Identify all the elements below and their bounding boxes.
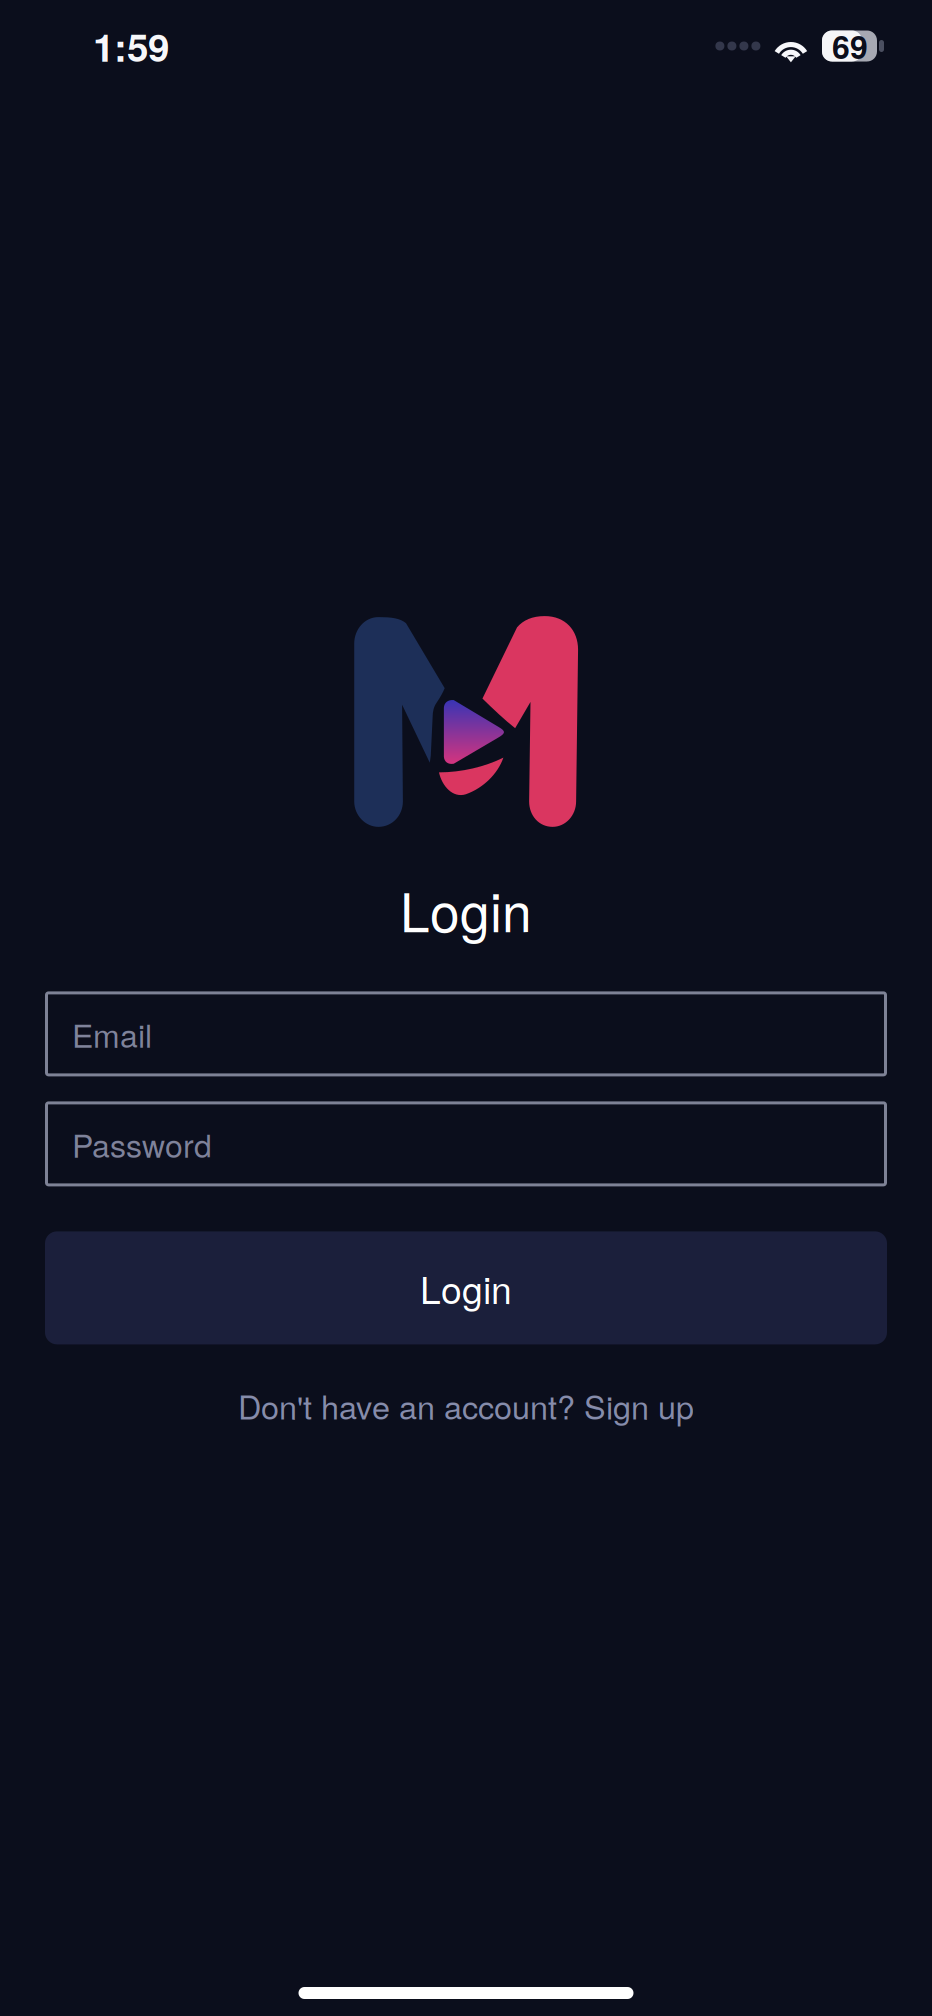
staticText: 69	[832, 23, 868, 69]
button[interactable]: Don't have an account? Sign up	[238, 1366, 694, 1445]
staticText: Password	[72, 1121, 212, 1167]
staticText: 1:59	[93, 18, 169, 74]
staticText: Login	[400, 871, 532, 947]
button[interactable]: Login	[45, 1231, 887, 1344]
staticText: Don't have an account? Sign up	[238, 1382, 694, 1429]
staticText: Email	[72, 1011, 152, 1057]
staticText: Login	[420, 1261, 512, 1315]
